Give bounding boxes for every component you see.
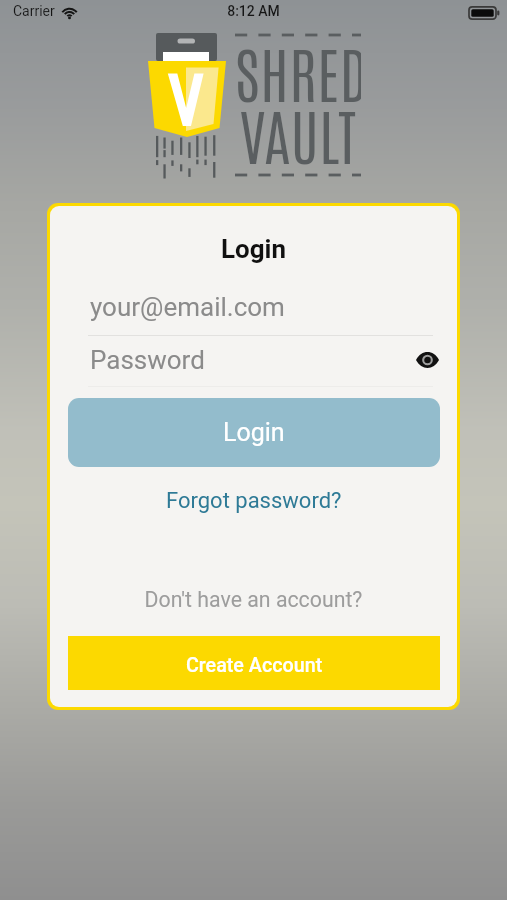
staticText: VAULT	[235, 94, 361, 173]
staticText: SHRED	[235, 32, 361, 111]
staticText: Carrier	[13, 3, 55, 19]
staticText: Don't have an account?	[50, 587, 457, 612]
staticText: Create Account	[186, 654, 323, 677]
staticText: Password	[90, 345, 205, 375]
button[interactable]: Forgot password?	[158, 484, 350, 518]
button[interactable]: Password	[88, 337, 446, 387]
staticText: Forgot password?	[166, 488, 342, 514]
button[interactable]: Create Account	[68, 636, 440, 690]
staticText: your@email.com	[90, 292, 285, 322]
button[interactable]: Login	[68, 398, 440, 467]
button[interactable]: your@email.com	[88, 283, 446, 336]
staticText: Login	[223, 418, 285, 447]
staticText: Login	[50, 234, 457, 264]
button[interactable]: Show password	[408, 341, 446, 379]
staticText: 8:12 AM	[0, 3, 507, 19]
